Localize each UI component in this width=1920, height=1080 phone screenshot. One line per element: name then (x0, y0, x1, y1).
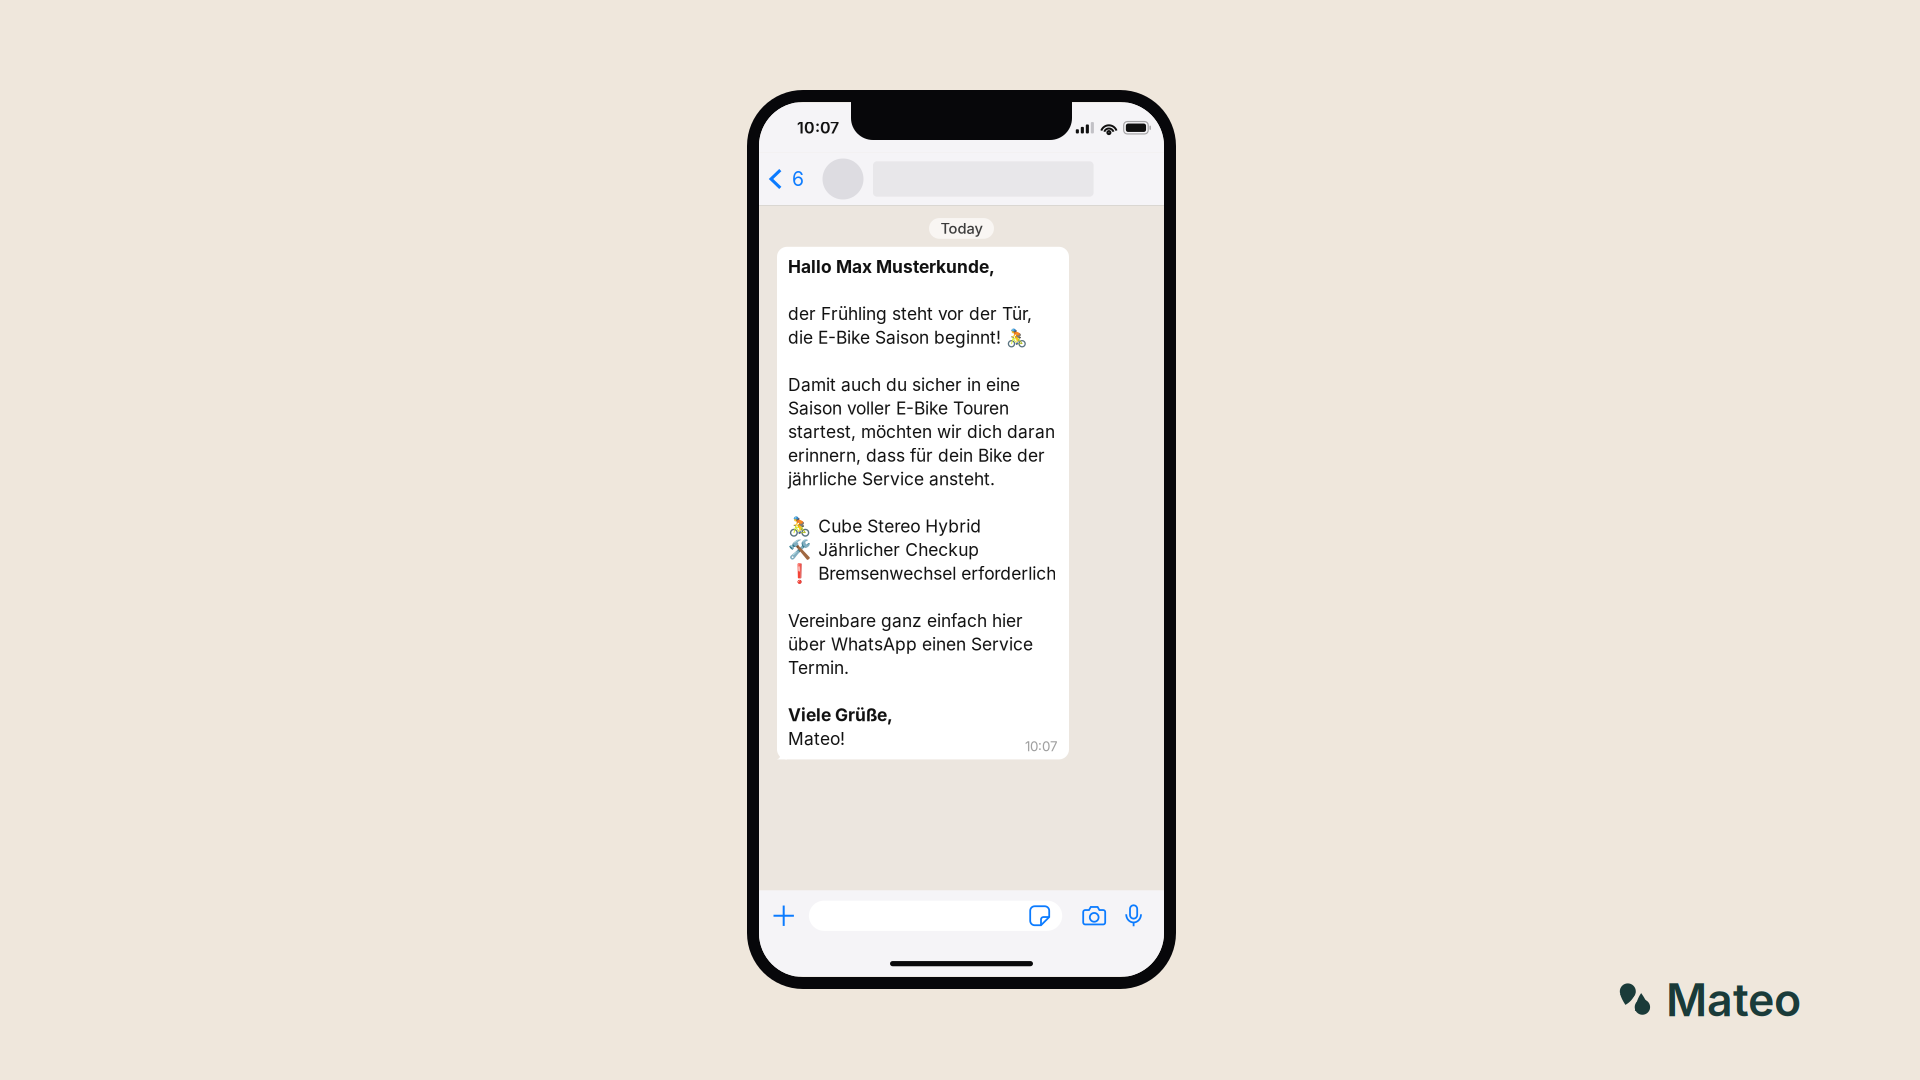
button[interactable]: Message field (809, 901, 1062, 931)
staticText: Bremsenwechsel erforderlich (818, 563, 1056, 584)
staticText: Viele Grüße, (788, 704, 893, 725)
staticText: Termin. (788, 657, 849, 678)
staticText: die E-Bike Saison beginnt! 🚴 (788, 327, 1028, 348)
staticText: 10:07 (1025, 738, 1058, 754)
staticText: Damit auch du sicher in eine (788, 374, 1020, 395)
staticText: Mateo! (788, 728, 845, 749)
staticText: Mateo (1666, 973, 1801, 1027)
staticText: Cube Stereo Hybrid (818, 516, 981, 537)
button[interactable]: Contact info (810, 155, 1094, 203)
staticText: 🚴 (788, 515, 811, 537)
staticText: 🛠 (788, 539, 811, 561)
staticText: Jährlicher Checkup (818, 539, 979, 560)
button[interactable]: Attach (769, 901, 799, 931)
staticText: 6 (792, 167, 804, 191)
button[interactable]: Camera (1079, 901, 1109, 931)
staticText: jährliche Service ansteht. (788, 468, 995, 489)
button[interactable]: Back (759, 155, 810, 203)
staticText: erinnern, dass für dein Bike der (788, 445, 1045, 466)
staticText: Saison voller E-Bike Touren (788, 398, 1009, 419)
staticText: 10:07 (797, 118, 839, 137)
button[interactable]: Voice message (1122, 901, 1146, 931)
staticText: Today (940, 220, 982, 237)
staticText: startest, möchten wir dich daran (788, 421, 1055, 442)
staticText: ❗ (788, 562, 811, 584)
staticText: über WhatsApp einen Service (788, 634, 1033, 655)
staticText: Hallo Max Musterkunde, (788, 256, 995, 277)
staticText: der Frühling steht vor der Tür, (788, 303, 1032, 324)
staticText: Vereinbare ganz einfach hier (788, 610, 1023, 631)
